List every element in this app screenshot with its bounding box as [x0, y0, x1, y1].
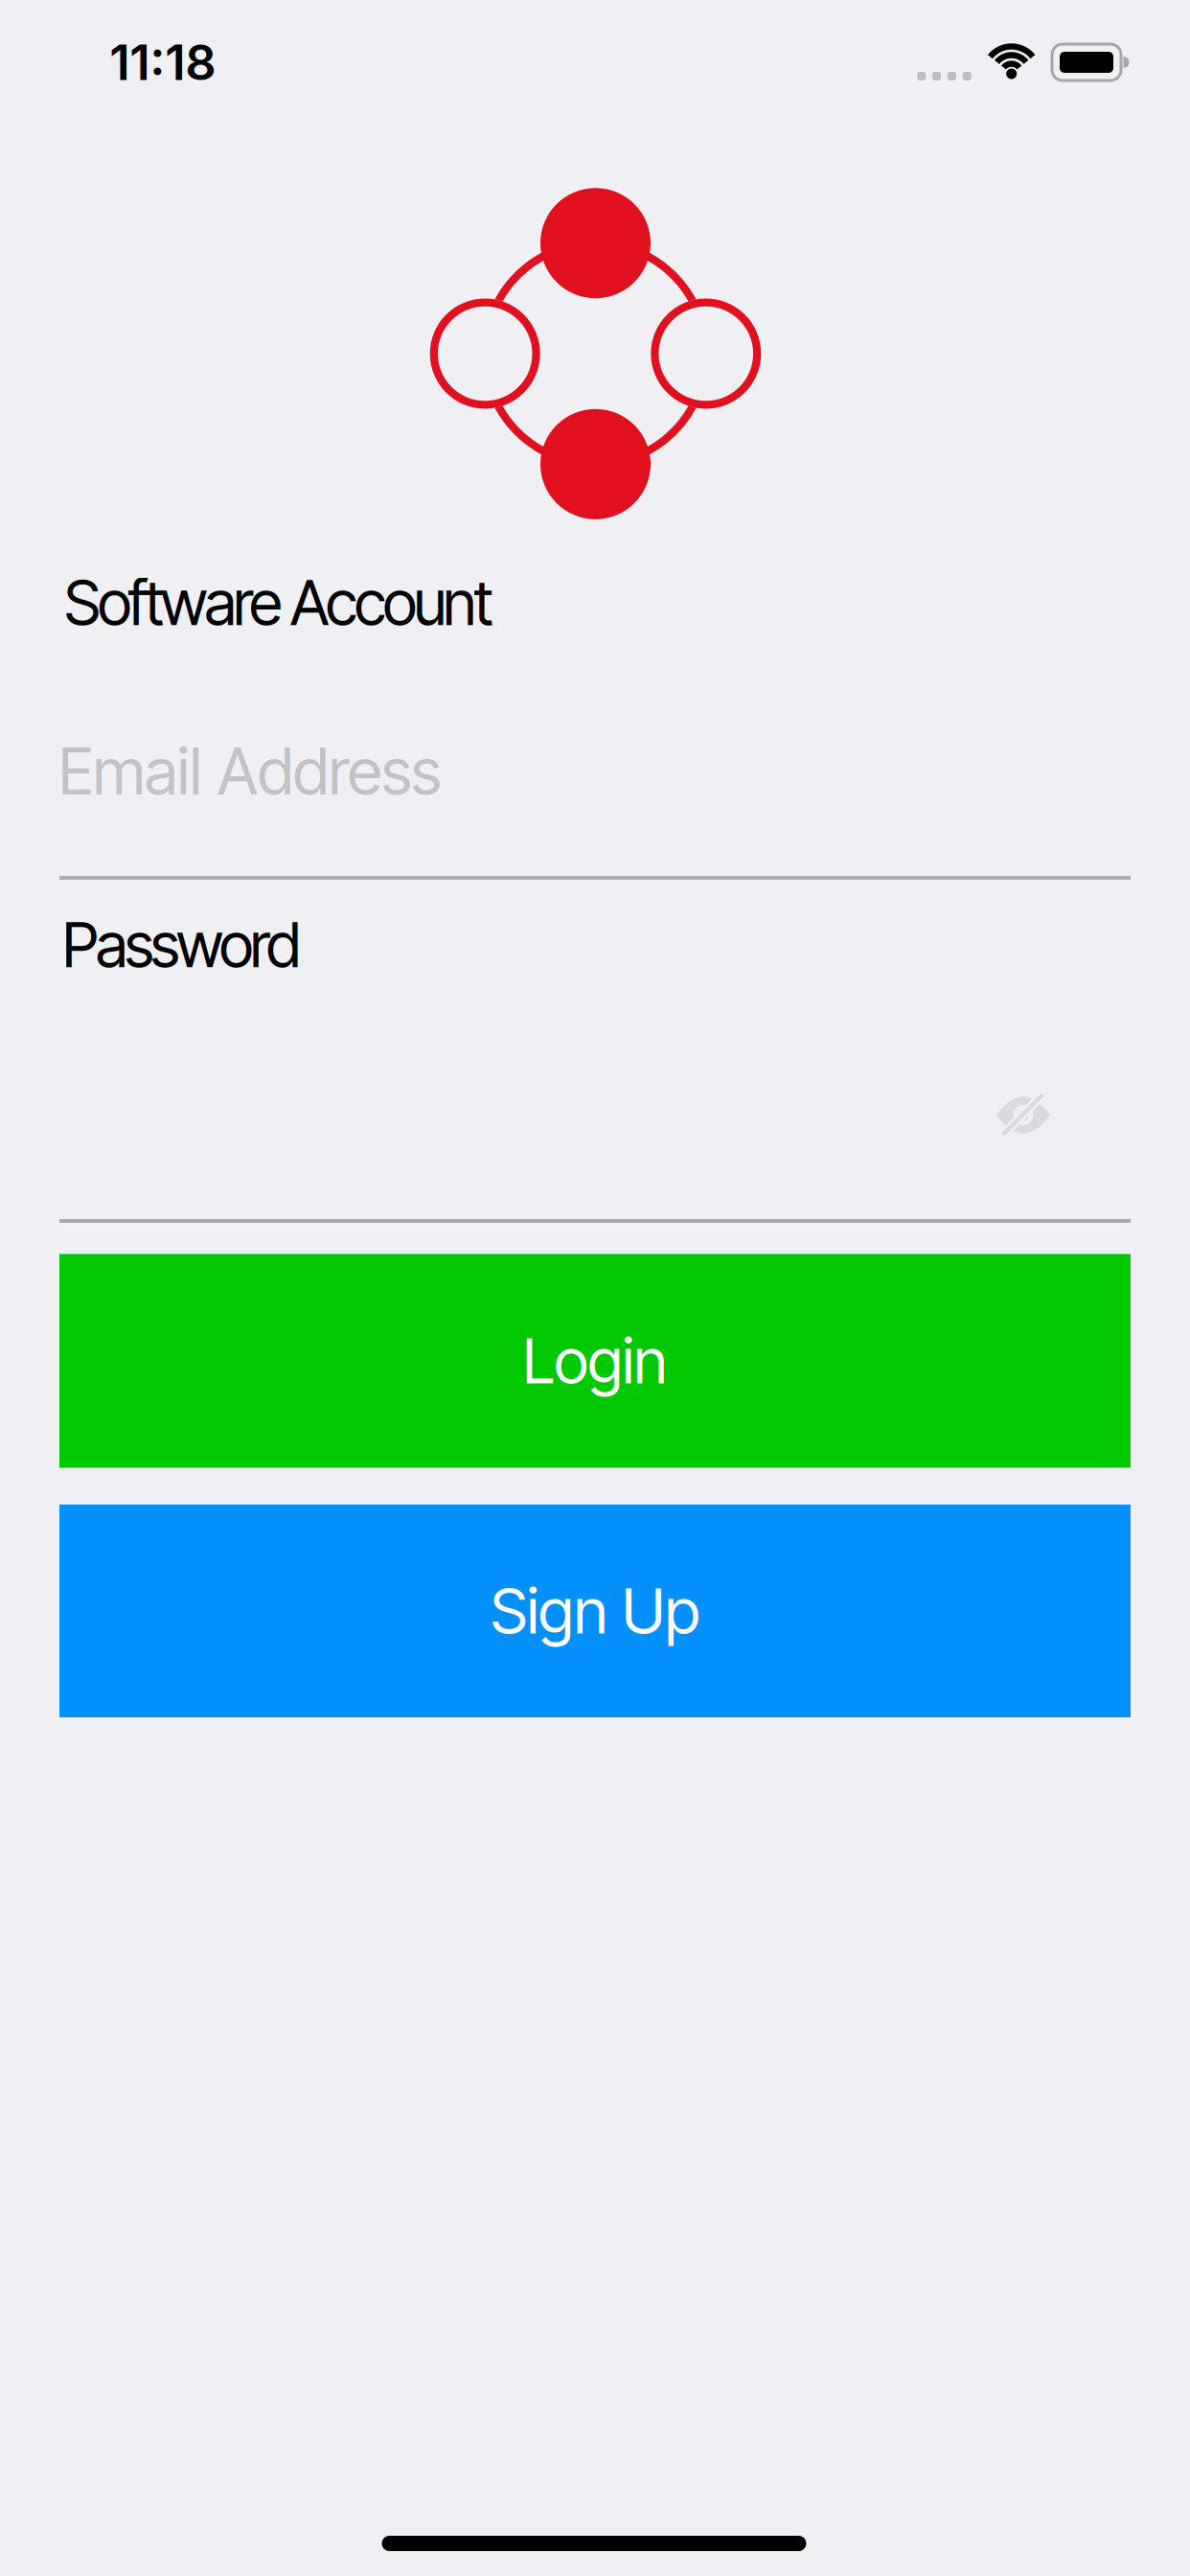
staticText: Login	[523, 1324, 667, 1398]
staticText: Email Address	[58, 733, 441, 810]
button[interactable]: Login	[59, 1254, 1131, 1468]
staticText: Password	[62, 908, 301, 982]
staticText: Software Account	[64, 566, 493, 640]
button[interactable]	[977, 1069, 1069, 1161]
button[interactable]: Sign Up	[59, 1505, 1131, 1717]
staticText: Sign Up	[491, 1573, 699, 1649]
staticText: 11:18	[109, 33, 216, 92]
button[interactable]: Email Address	[58, 709, 1124, 834]
